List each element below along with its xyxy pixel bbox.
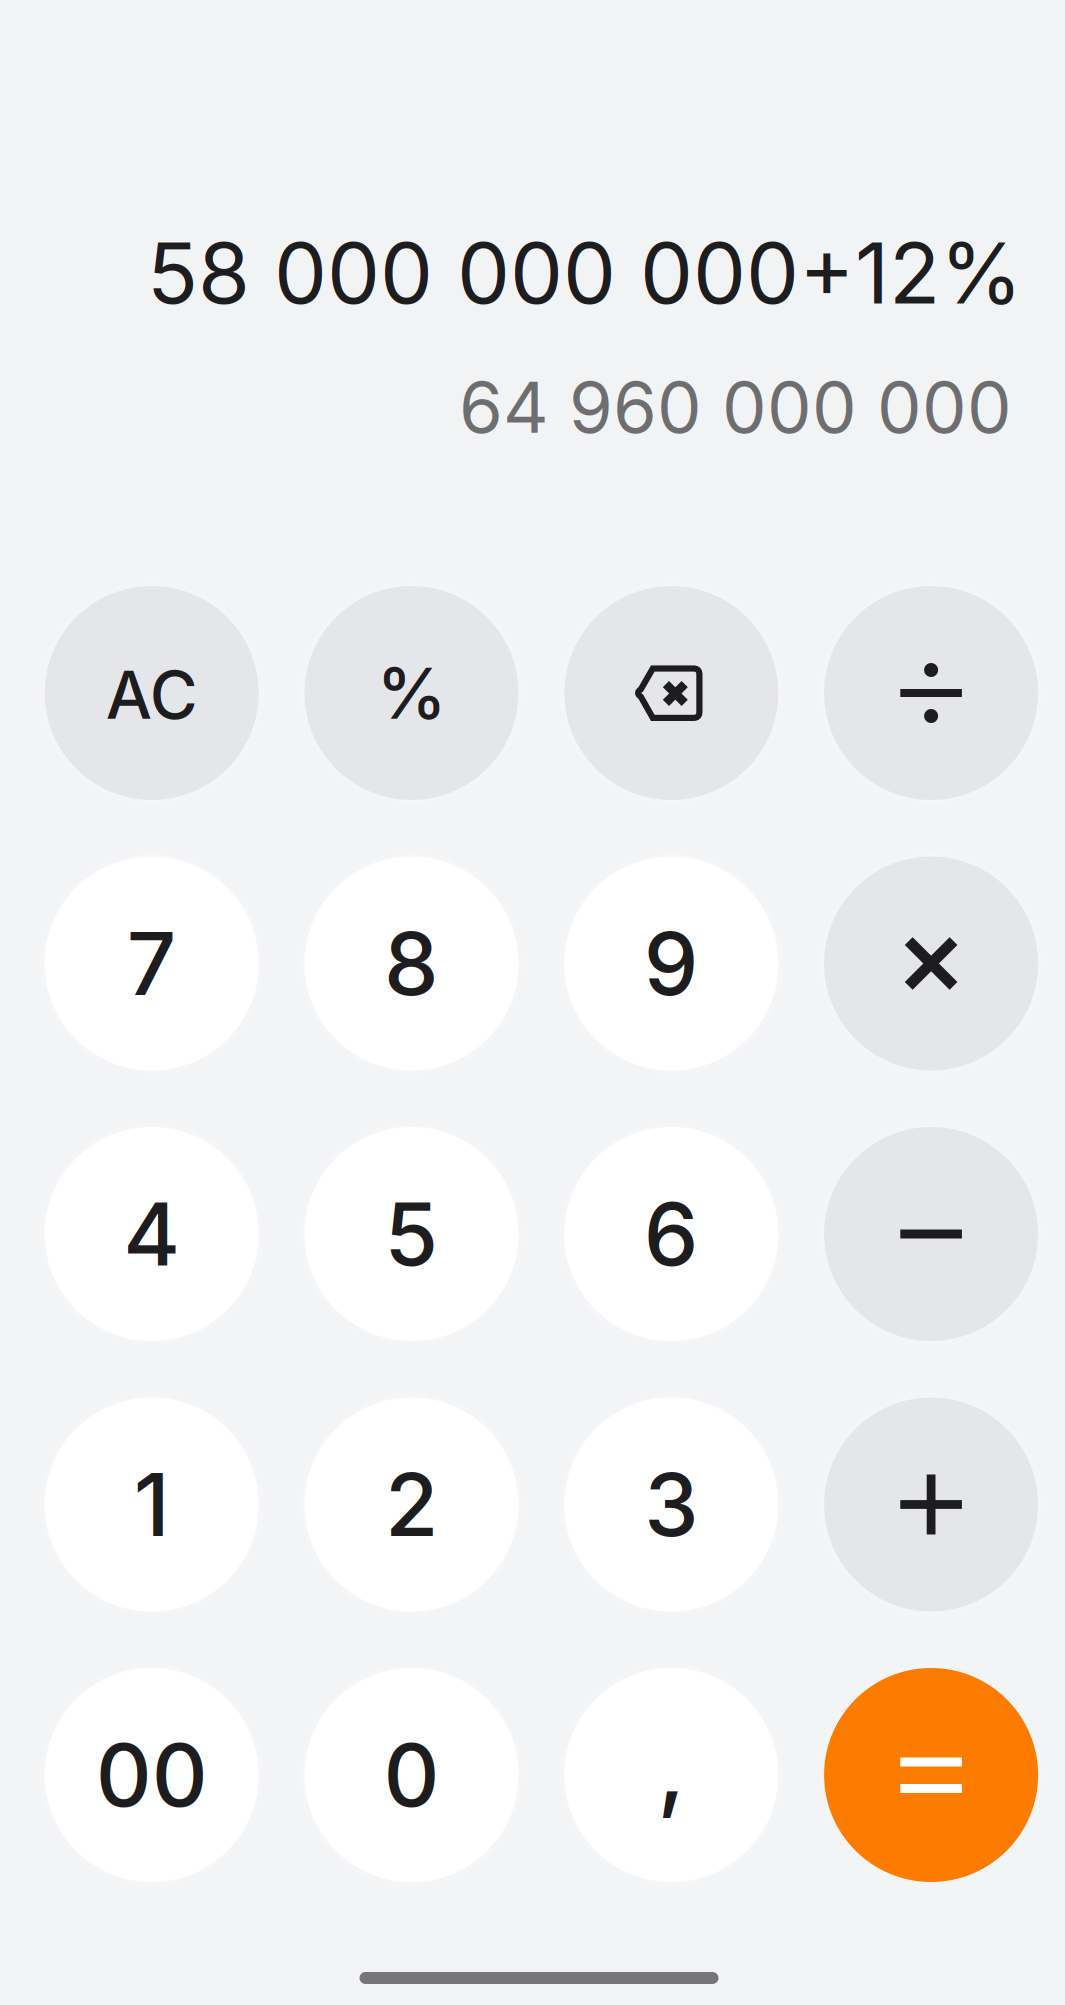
staticText: 1 (134, 1452, 170, 1557)
staticText: , (657, 1710, 685, 1823)
button[interactable]: 9 (564, 856, 778, 1070)
button[interactable]: 5 (304, 1127, 518, 1341)
button[interactable]: 1 (45, 1397, 259, 1611)
staticText: 00 (96, 1723, 208, 1827)
staticText: 64 960 000 000 (459, 364, 1012, 450)
button[interactable]: 8 (304, 856, 518, 1070)
button[interactable]: Plus (824, 1397, 1038, 1611)
button[interactable]: 3 (564, 1397, 778, 1611)
button[interactable]: Delete (564, 586, 778, 800)
staticText: 3 (644, 1452, 698, 1557)
staticText: 0 (383, 1723, 439, 1827)
button[interactable]: % (304, 586, 518, 800)
staticText: 5 (384, 1182, 438, 1286)
button[interactable]: Equals (824, 1668, 1038, 1882)
button[interactable]: 2 (304, 1397, 518, 1611)
staticText: 8 (384, 911, 439, 1016)
staticText: 2 (385, 1452, 438, 1557)
staticText: 7 (127, 911, 177, 1016)
staticText: 58 000 000 000+12% (147, 222, 1022, 324)
staticText: AC (106, 655, 198, 734)
staticText: % (376, 650, 446, 736)
button[interactable]: Divide (824, 586, 1038, 800)
staticText: 4 (123, 1182, 180, 1286)
button[interactable]: 00 (45, 1668, 259, 1882)
button[interactable]: , (564, 1668, 778, 1882)
button[interactable]: AC (45, 586, 259, 800)
button[interactable]: 4 (45, 1127, 259, 1341)
button[interactable]: 6 (564, 1127, 778, 1341)
button[interactable]: 0 (304, 1668, 518, 1882)
staticText: 6 (644, 1182, 699, 1286)
button[interactable]: 7 (45, 856, 259, 1070)
button[interactable]: Minus (824, 1127, 1038, 1341)
button[interactable]: Multiply (824, 856, 1038, 1070)
staticText: 9 (644, 911, 699, 1016)
